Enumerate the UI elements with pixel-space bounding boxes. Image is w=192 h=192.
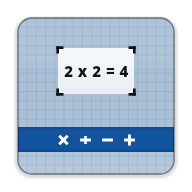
staticText: 2 x 2 = 4 xyxy=(64,61,129,81)
button[interactable]: Math equation scanner app icon xyxy=(18,18,174,174)
button[interactable]: Operators multiply divide minus plus xyxy=(18,127,174,152)
button[interactable]: Scan equation viewfinder xyxy=(58,48,134,94)
